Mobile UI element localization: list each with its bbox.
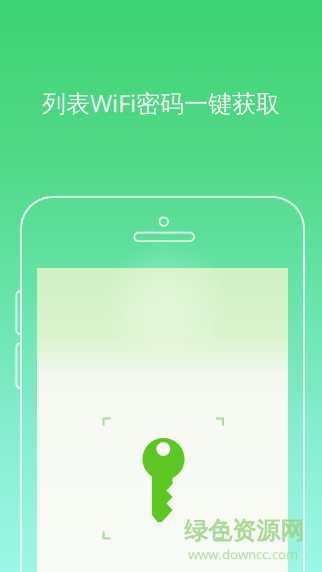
staticText: 列表WiFi密码一键获取 bbox=[42, 87, 280, 119]
staticText: 绿色资源网 bbox=[184, 516, 304, 546]
staticText: www.downcc.com bbox=[188, 545, 298, 563]
